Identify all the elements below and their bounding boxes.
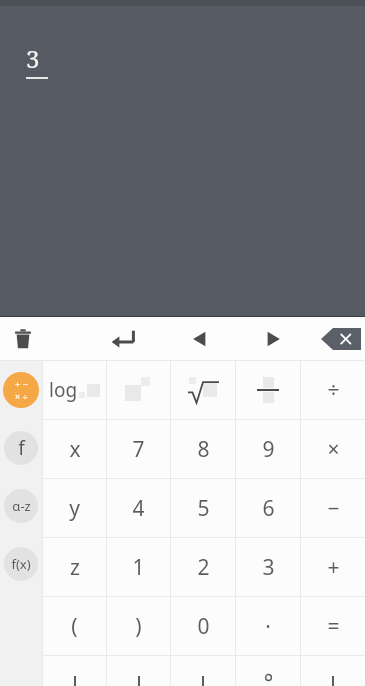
staticText: z <box>70 553 80 582</box>
button[interactable]: 8 <box>171 420 235 478</box>
button[interactable]: Clear all <box>0 317 46 360</box>
staticText: − <box>327 494 340 523</box>
button[interactable]: Backspace <box>321 317 365 360</box>
button[interactable]: 4 <box>107 479 170 537</box>
staticText: f(x) <box>11 555 31 573</box>
staticText: x <box>69 435 81 464</box>
button[interactable] <box>43 656 106 686</box>
staticText: 6 <box>262 494 275 523</box>
button[interactable] <box>171 361 235 419</box>
staticText: 5 <box>197 494 210 523</box>
staticText: α-z <box>12 497 31 515</box>
button[interactable] <box>171 656 235 686</box>
button[interactable]: 7 <box>107 420 170 478</box>
staticText: × <box>327 435 340 464</box>
button[interactable]: Move right <box>248 317 298 360</box>
staticText: 0 <box>197 612 210 641</box>
staticText: = <box>327 612 340 641</box>
button[interactable]: Greek and letters <box>0 477 42 535</box>
staticText: ( <box>71 612 78 641</box>
button[interactable]: Functions <box>0 419 42 477</box>
button[interactable]: y <box>43 479 106 537</box>
button[interactable]: x <box>43 420 106 478</box>
button[interactable]: · <box>236 597 300 655</box>
button[interactable]: 1 <box>107 538 170 596</box>
button[interactable]: z <box>43 538 106 596</box>
button[interactable]: 6 <box>236 479 300 537</box>
staticText: 1 <box>132 553 145 582</box>
staticText: · <box>265 612 271 641</box>
button[interactable]: Operators <box>0 361 42 419</box>
staticText: log <box>49 377 78 403</box>
button[interactable] <box>107 656 170 686</box>
button[interactable] <box>236 656 300 686</box>
button[interactable]: × <box>301 420 365 478</box>
button[interactable]: Custom functions <box>0 535 42 593</box>
staticText: 9 <box>262 435 275 464</box>
staticText: 2 <box>197 553 210 582</box>
staticText: y <box>69 494 80 523</box>
staticText: ÷ <box>327 376 340 405</box>
staticText: × ÷ <box>15 390 28 402</box>
staticText: f <box>18 435 25 461</box>
staticText: 8 <box>197 435 210 464</box>
staticText: + − <box>15 378 28 390</box>
button[interactable]: 2 <box>171 538 235 596</box>
staticText: + <box>327 553 340 582</box>
button[interactable] <box>107 361 170 419</box>
staticText: 7 <box>132 435 145 464</box>
button[interactable] <box>301 656 365 686</box>
button[interactable]: Move left <box>175 317 225 360</box>
button[interactable]: − <box>301 479 365 537</box>
button[interactable]: 9 <box>236 420 300 478</box>
button[interactable]: 3 <box>236 538 300 596</box>
button[interactable]: ( <box>43 597 106 655</box>
button[interactable]: Enter <box>96 317 150 360</box>
staticText: 4 <box>132 494 145 523</box>
button[interactable]: + <box>301 538 365 596</box>
button[interactable]: ) <box>107 597 170 655</box>
button[interactable]: 0 <box>171 597 235 655</box>
button[interactable]: 5 <box>171 479 235 537</box>
button[interactable]: ÷ <box>301 361 365 419</box>
staticText: 3 <box>262 553 275 582</box>
button[interactable]: = <box>301 597 365 655</box>
staticText: ) <box>135 612 142 641</box>
button[interactable]: log <box>43 361 106 419</box>
button[interactable] <box>236 361 300 419</box>
staticText: 3 <box>26 42 40 75</box>
